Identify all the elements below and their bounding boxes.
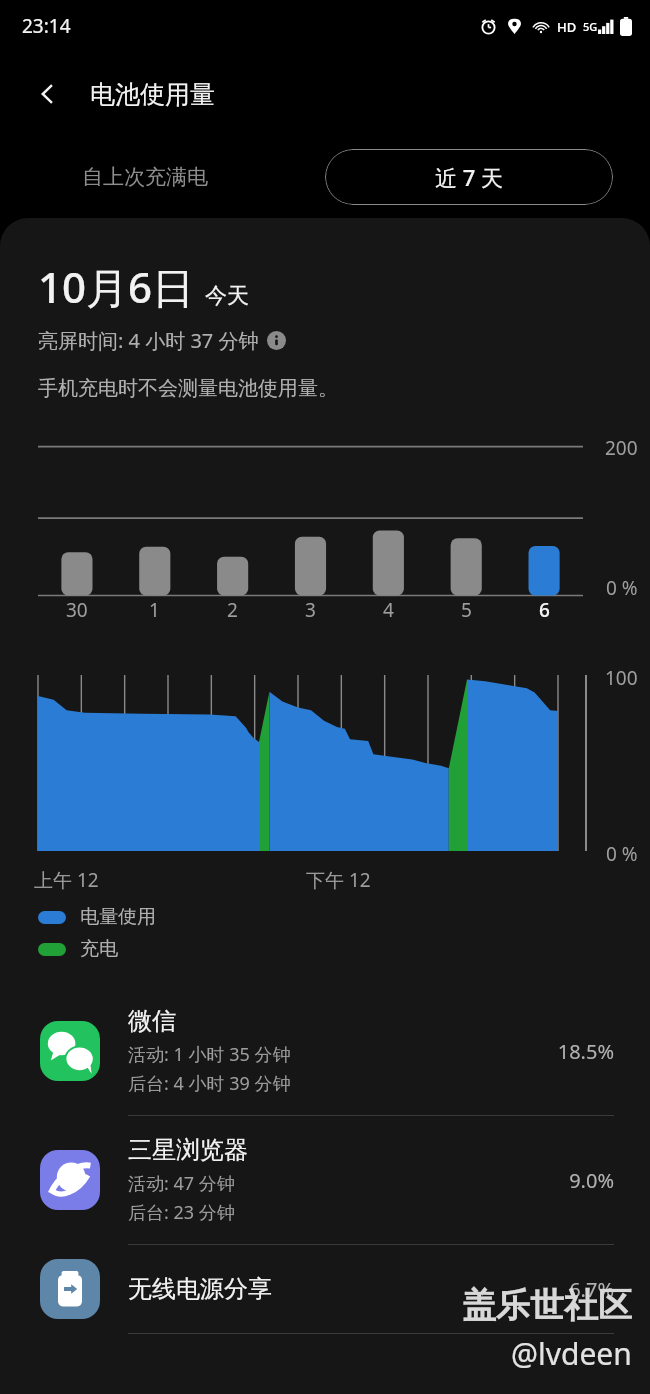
staticText: 亮屏时间: 4 小时 37 分钟 xyxy=(38,327,259,354)
staticText: 微信 xyxy=(128,1006,176,1036)
staticText: 10月6日 xyxy=(38,258,195,315)
staticText: 0 % xyxy=(606,575,638,601)
button[interactable]: Back xyxy=(24,70,72,118)
staticText: 电池使用量 xyxy=(90,79,215,110)
staticText: 后台: 4 小时 39 分钟 xyxy=(128,1071,291,1096)
staticText: 3 xyxy=(305,597,316,623)
staticText: 9.0% xyxy=(569,1167,614,1194)
button[interactable]: Info xyxy=(267,331,286,350)
button[interactable]: 微信 xyxy=(0,987,650,1116)
staticText: 活动: 47 分钟 xyxy=(128,1171,235,1196)
staticText: 自上次充满电 xyxy=(82,164,208,190)
staticText: 5 xyxy=(461,597,472,623)
staticText: 23:14 xyxy=(22,13,71,39)
staticText: 今天 xyxy=(205,282,249,310)
staticText: 上午 12 xyxy=(34,867,99,893)
button[interactable]: 三星浏览器 xyxy=(0,1116,650,1245)
staticText: 18.5% xyxy=(557,1038,614,1065)
staticText: 5G xyxy=(583,19,598,34)
staticText: 1 xyxy=(149,597,160,623)
staticText: 手机充电时不会测量电池使用量。 xyxy=(38,376,338,401)
staticText: 无线电源分享 xyxy=(128,1274,272,1304)
staticText: 三星浏览器 xyxy=(128,1135,248,1165)
staticText: 近 7 天 xyxy=(435,162,504,192)
staticText: 活动: 1 小时 35 分钟 xyxy=(128,1042,291,1067)
staticText: 30 xyxy=(66,597,88,623)
staticText: 100 xyxy=(605,665,638,691)
staticText: 6 xyxy=(539,597,550,623)
staticText: 4 xyxy=(383,597,394,623)
staticText: 0 % xyxy=(606,841,638,867)
button[interactable]: 无线电源分享 xyxy=(0,1245,650,1334)
staticText: 6.7% xyxy=(569,1276,614,1303)
staticText: 下午 12 xyxy=(306,867,371,893)
staticText: HD xyxy=(557,18,577,36)
button[interactable]: 自上次充满电 xyxy=(66,152,224,202)
button[interactable]: 近 7 天 xyxy=(325,149,613,205)
staticText: 盖乐世社区 xyxy=(462,1284,632,1327)
staticText: 2 xyxy=(227,597,238,623)
staticText: 后台: 23 分钟 xyxy=(128,1200,235,1225)
staticText: 200 xyxy=(605,435,638,461)
staticText: 充电 xyxy=(80,937,118,961)
staticText: 电量使用 xyxy=(80,905,156,929)
staticText: @lvdeen xyxy=(511,1333,632,1374)
